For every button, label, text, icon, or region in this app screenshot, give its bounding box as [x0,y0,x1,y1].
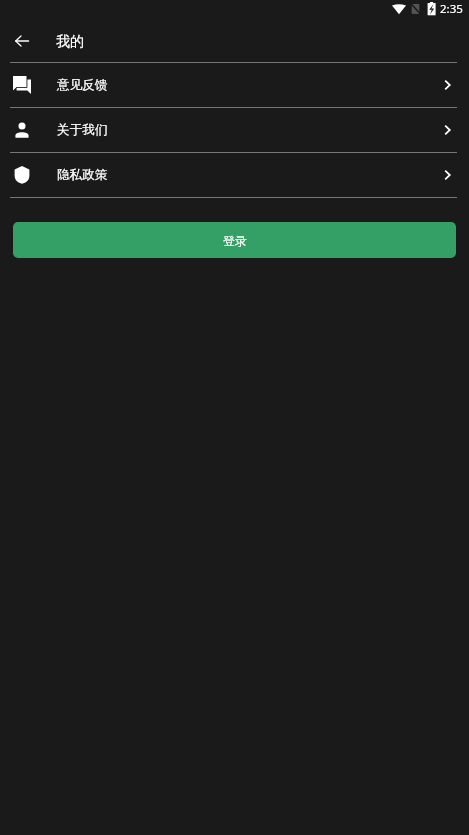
button[interactable]: 关于我们 [0,108,469,152]
button[interactable]: 隐私政策 [0,153,469,197]
staticText: 登录 [223,233,247,248]
button[interactable]: Back [0,18,44,62]
staticText: 2:35 [440,1,463,17]
button[interactable]: 登录 [13,222,456,258]
button[interactable]: 意见反馈 [0,63,469,107]
staticText: 隐私政策 [57,167,108,183]
staticText: 意见反馈 [57,77,108,93]
staticText: 关于我们 [57,122,108,138]
staticText: 我的 [56,33,84,51]
